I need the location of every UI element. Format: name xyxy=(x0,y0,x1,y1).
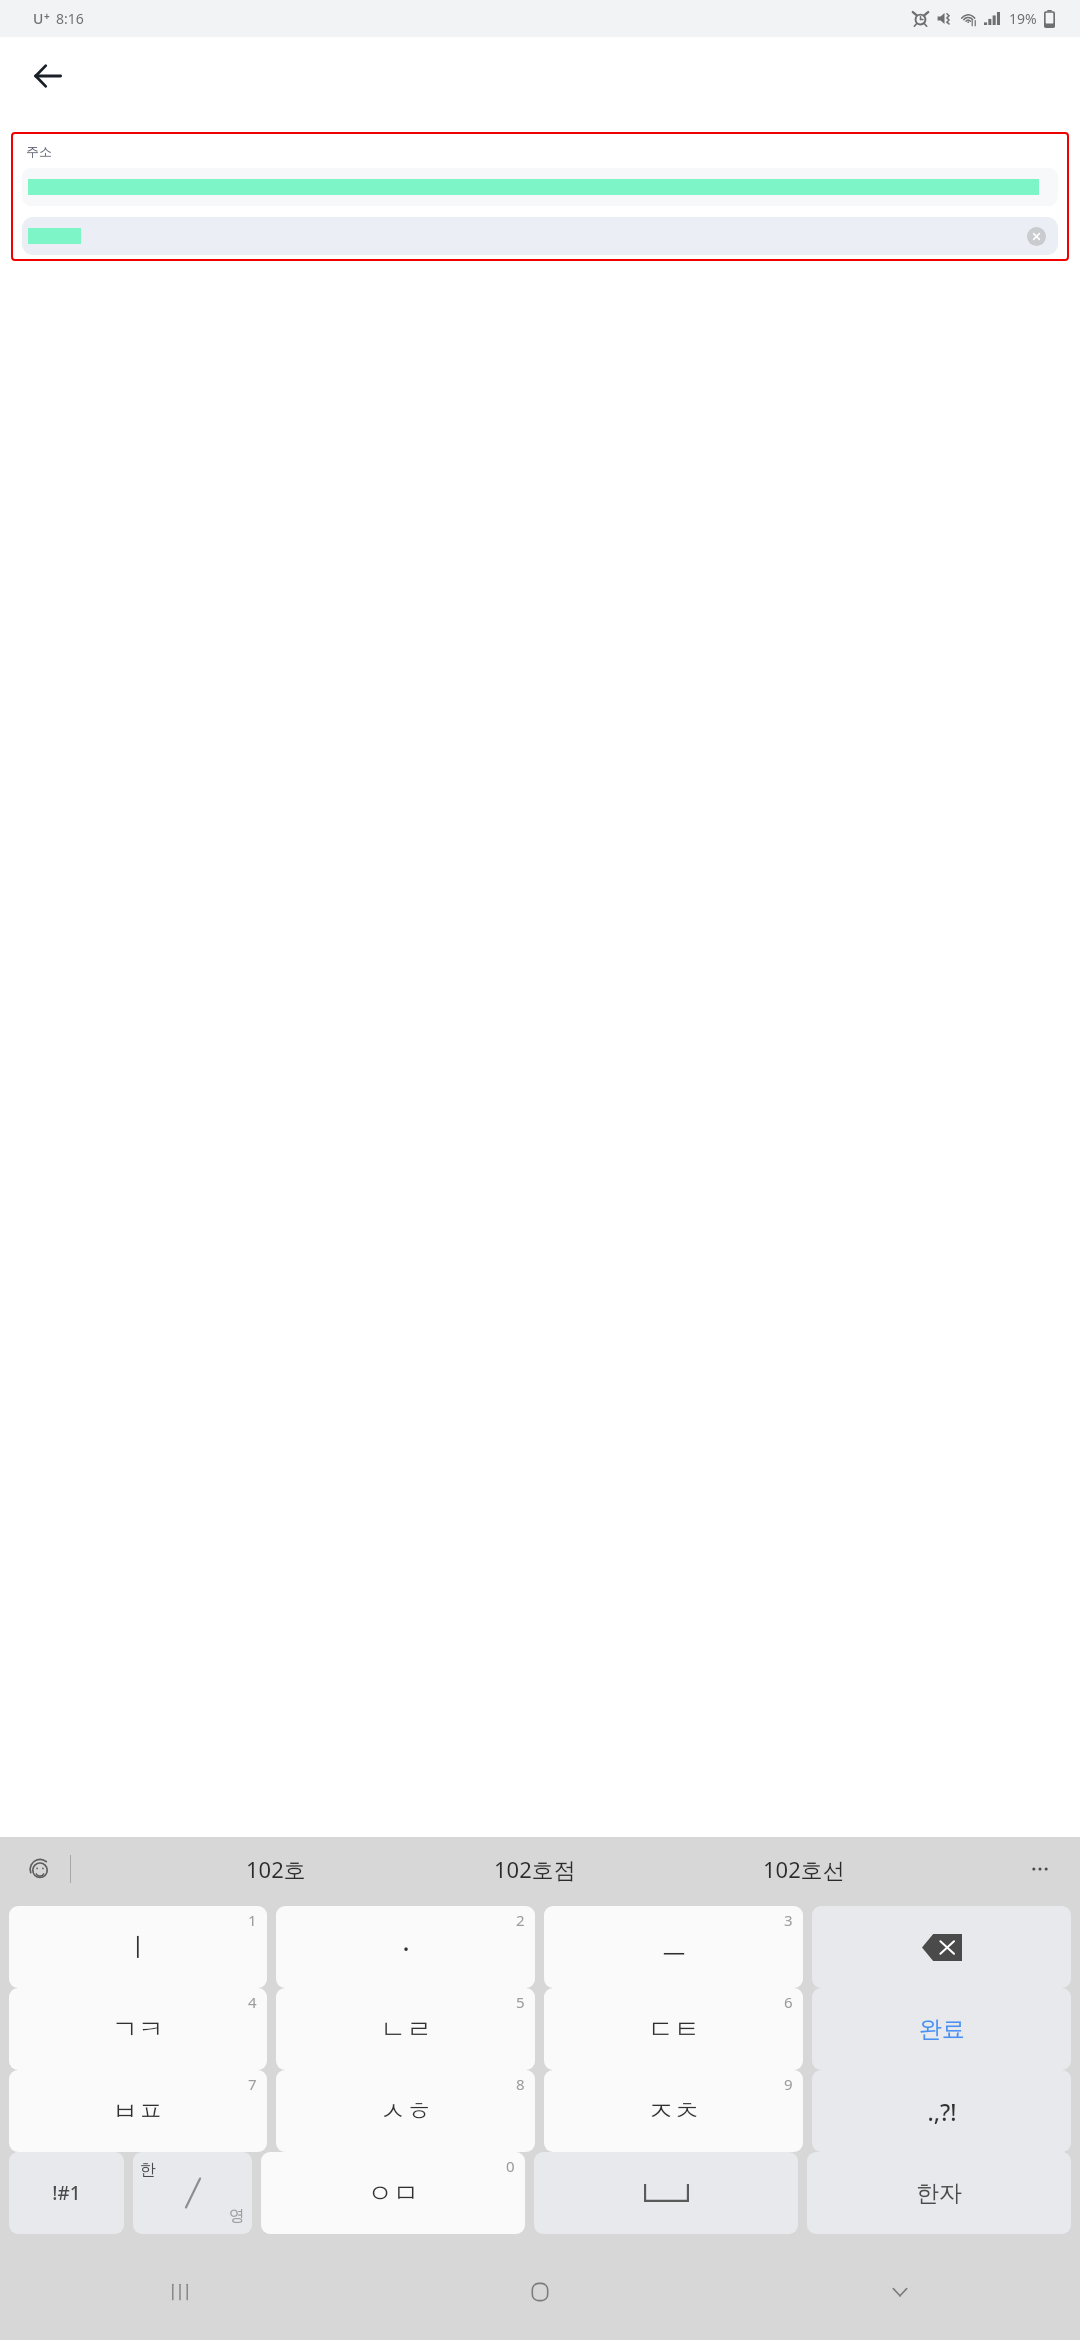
staticText: ㅡ xyxy=(661,1931,687,1964)
staticText: 19% xyxy=(1009,9,1037,28)
staticText: 0 xyxy=(506,2156,515,2176)
button[interactable]: ㄴㄹ xyxy=(276,1988,535,2070)
staticText: 8:16 xyxy=(56,9,84,28)
staticText: U xyxy=(33,9,44,28)
staticText: 4 xyxy=(248,1992,257,2012)
button[interactable]: Space xyxy=(534,2152,798,2234)
button[interactable]: Clear text xyxy=(22,217,1058,255)
staticText: ㅈㅊ xyxy=(648,2095,700,2128)
button[interactable]: .,?! xyxy=(812,2070,1071,2152)
button[interactable]: ㅈㅊ xyxy=(544,2070,803,2152)
staticText: 영 xyxy=(229,2206,245,2226)
staticText: 5 xyxy=(516,1992,525,2012)
button[interactable]: ㅣ xyxy=(9,1906,267,1988)
staticText: .,?! xyxy=(927,2096,957,2127)
staticText: + xyxy=(44,9,50,23)
button[interactable]: Clear text xyxy=(1027,227,1046,246)
staticText: ㅂㅍ xyxy=(112,2095,164,2128)
button[interactable] xyxy=(22,168,1058,206)
button[interactable]: ㅇㅁ xyxy=(261,2152,525,2234)
staticText: ㄱㅋ xyxy=(112,2013,164,2046)
button[interactable]: 한자 xyxy=(807,2152,1071,2234)
button[interactable]: Korean English toggle xyxy=(133,2152,252,2234)
staticText: !#1 xyxy=(52,2180,81,2206)
staticText: 7 xyxy=(248,2074,257,2094)
button[interactable]: Back xyxy=(20,48,76,104)
staticText: 주소 xyxy=(26,143,52,159)
staticText: ㅇㅁ xyxy=(367,2177,419,2210)
button[interactable]: More options xyxy=(1020,1849,1060,1889)
staticText: 102호점 xyxy=(494,1854,576,1884)
staticText: 한자 xyxy=(916,2179,962,2208)
button[interactable]: 완료 xyxy=(812,1988,1071,2070)
button[interactable]: 102호선 xyxy=(751,1848,857,1890)
button[interactable]: ㄱㅋ xyxy=(9,1988,267,2070)
button[interactable]: 102호점 xyxy=(482,1848,588,1890)
staticText: 2 xyxy=(516,1910,525,1930)
button[interactable]: ㅅㅎ xyxy=(276,2070,535,2152)
staticText: 한 xyxy=(140,2160,156,2180)
staticText: ㄴㄹ xyxy=(380,2013,432,2046)
staticText: 1 xyxy=(248,1910,257,1930)
button[interactable]: Emoji and settings xyxy=(20,1849,60,1889)
staticText: 9 xyxy=(784,2074,793,2094)
staticText: · xyxy=(402,1930,410,1965)
staticText: 8 xyxy=(516,2074,525,2094)
button[interactable]: Home xyxy=(360,2244,720,2340)
staticText: 102호 xyxy=(246,1854,306,1884)
button[interactable]: ㅡ xyxy=(544,1906,803,1988)
staticText: 3 xyxy=(784,1910,793,1930)
button[interactable]: 102호 xyxy=(234,1848,318,1890)
staticText: 102호선 xyxy=(763,1854,845,1884)
button[interactable]: ㅂㅍ xyxy=(9,2070,267,2152)
staticText: ㄷㅌ xyxy=(648,2013,700,2046)
button[interactable]: ㄷㅌ xyxy=(544,1988,803,2070)
button[interactable]: !#1 xyxy=(9,2152,124,2234)
button[interactable]: Backspace xyxy=(812,1906,1071,1988)
staticText: 완료 xyxy=(919,2015,965,2044)
button[interactable]: Recent apps xyxy=(0,2244,360,2340)
staticText: 6 xyxy=(784,1992,793,2012)
button[interactable]: · xyxy=(276,1906,535,1988)
staticText: ㅅㅎ xyxy=(380,2095,432,2128)
staticText: ㅣ xyxy=(125,1931,151,1964)
